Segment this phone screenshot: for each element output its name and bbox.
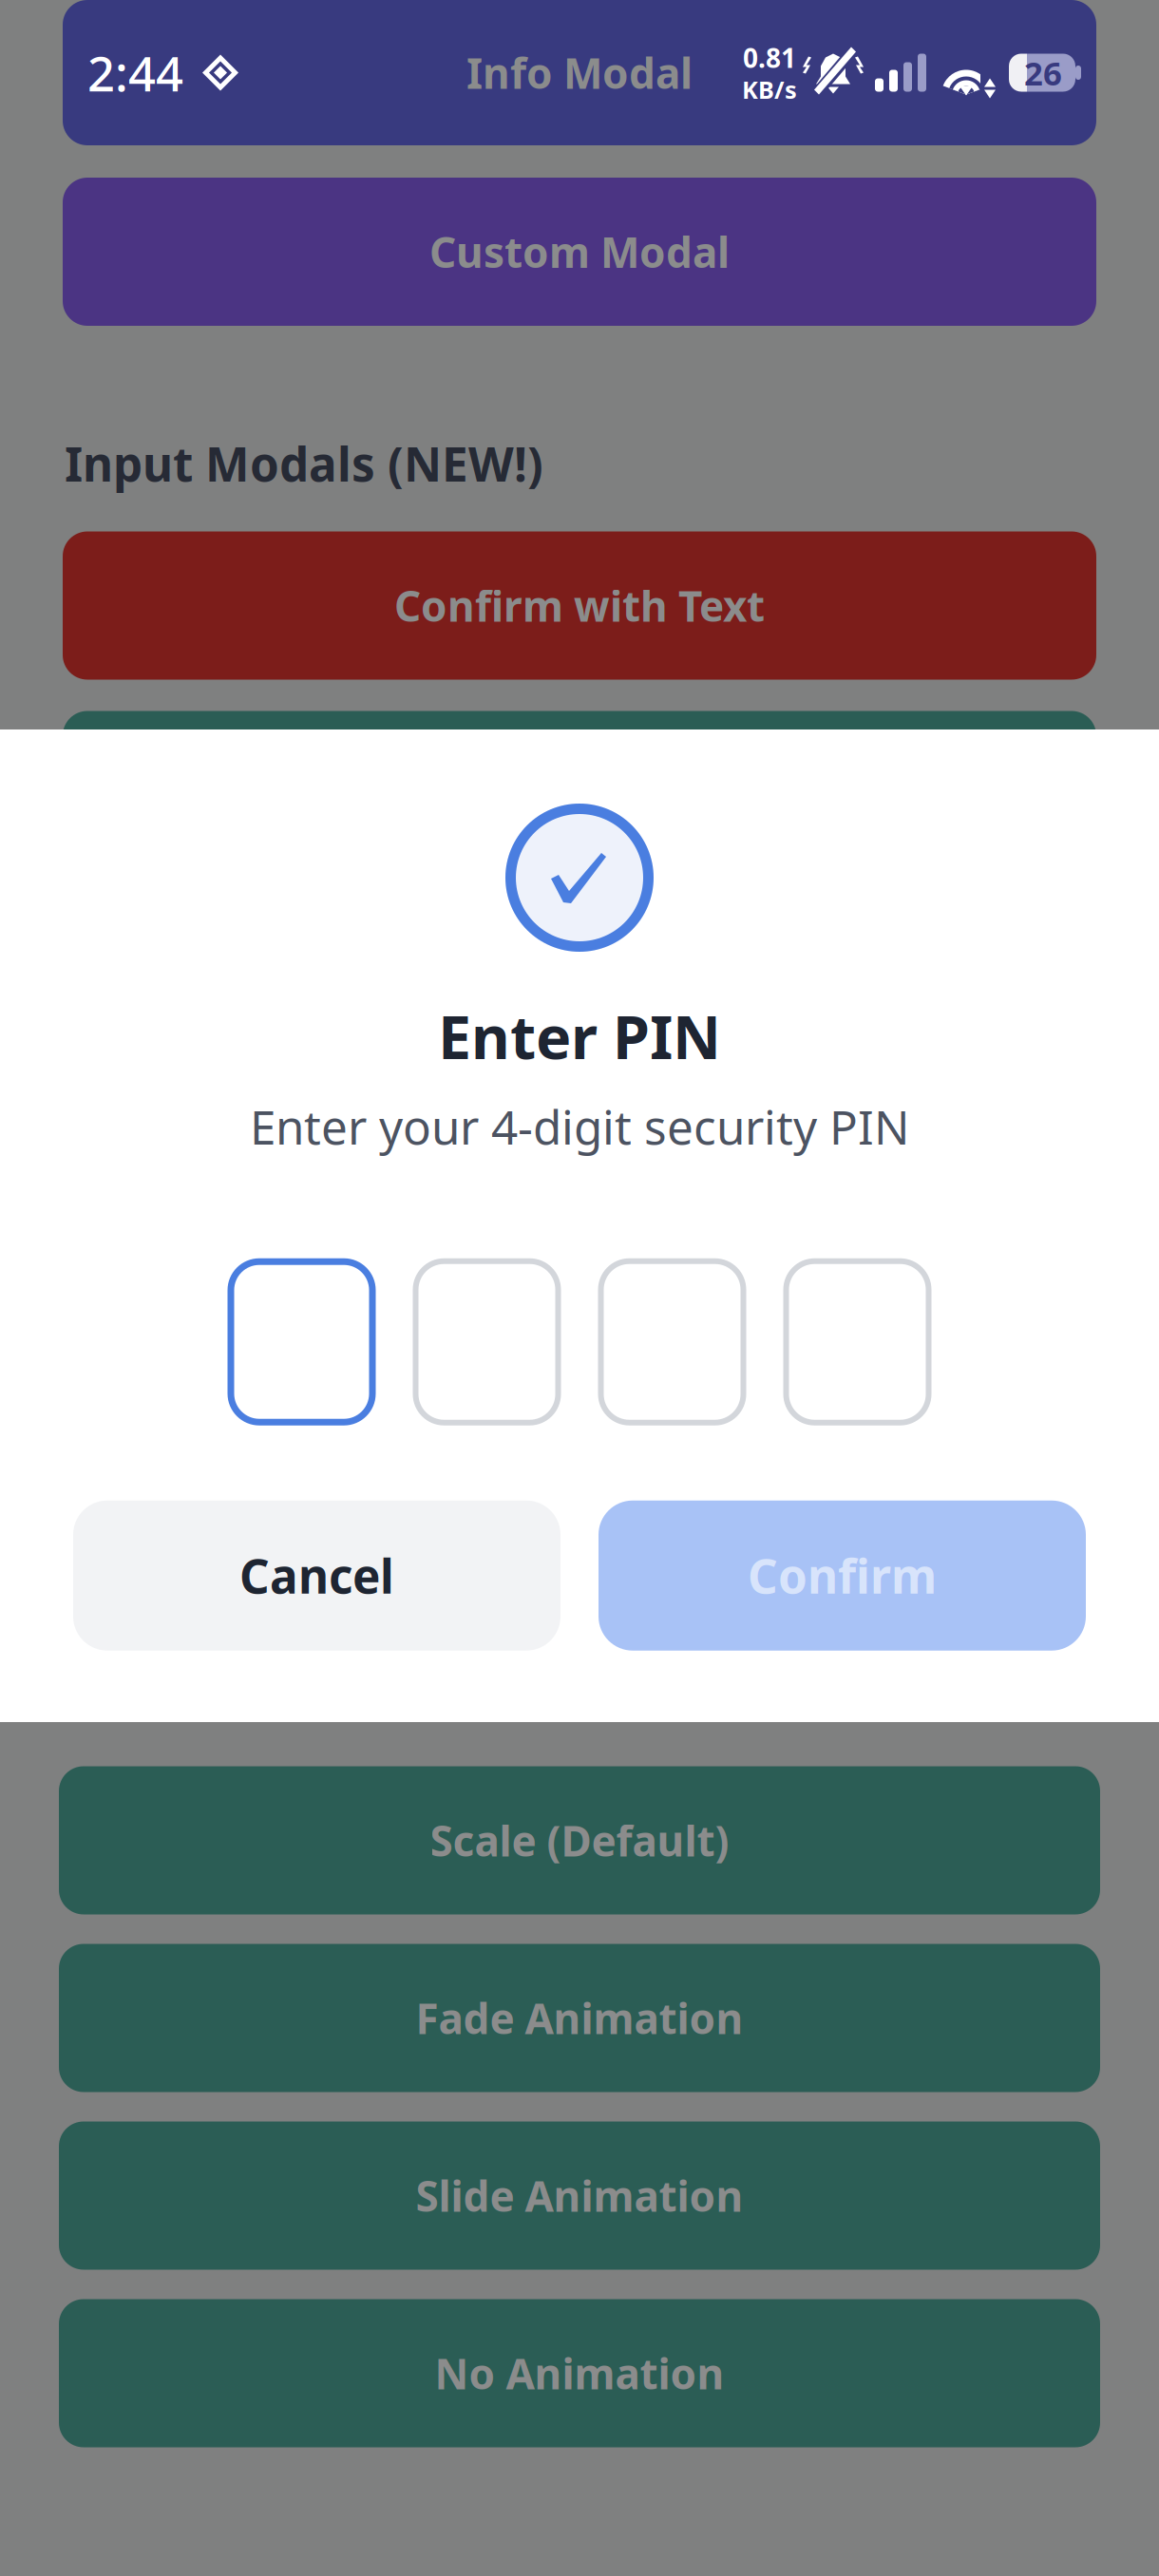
- button[interactable]: Info Modal: [63, 0, 1096, 145]
- button[interactable]: Slide Animation: [59, 2121, 1100, 2270]
- button[interactable]: Confirm with Number: [63, 711, 1096, 859]
- button[interactable]: Fade Animation: [59, 1944, 1100, 2092]
- staticText: Scale (Default): [430, 1813, 729, 1868]
- button[interactable]: Confirm with Text: [63, 531, 1096, 680]
- staticText: Enter PIN: [438, 996, 721, 1075]
- staticText: Cancel: [239, 1544, 394, 1607]
- staticText: Animation Modals: [65, 1666, 492, 1728]
- staticText: Info Modal: [466, 45, 693, 100]
- staticText: Confirm: [748, 1544, 937, 1607]
- staticText: Input Modals (NEW!): [65, 432, 543, 494]
- staticText: Fade Animation: [416, 1990, 743, 2046]
- staticText: Custom Modal: [429, 224, 730, 279]
- staticText: Confirm with Text: [394, 578, 765, 633]
- staticText: Confirm with Number: [351, 757, 808, 813]
- staticText: Enter your 4-digit security PIN: [250, 1095, 909, 1158]
- staticText: 0.81: [743, 40, 796, 75]
- staticText: 2:44: [87, 41, 183, 105]
- button[interactable]: Scale (Default): [59, 1766, 1100, 1914]
- button[interactable]: Custom Modal: [63, 178, 1096, 326]
- staticText: 26: [1024, 51, 1062, 95]
- button[interactable]: Cancel: [73, 1500, 560, 1651]
- staticText: No Animation: [435, 2345, 724, 2401]
- button[interactable]: No Animation: [59, 2299, 1100, 2447]
- button[interactable]: Confirm: [598, 1500, 1086, 1651]
- staticText: Slide Animation: [416, 2168, 743, 2223]
- staticText: KB/s: [742, 73, 797, 105]
